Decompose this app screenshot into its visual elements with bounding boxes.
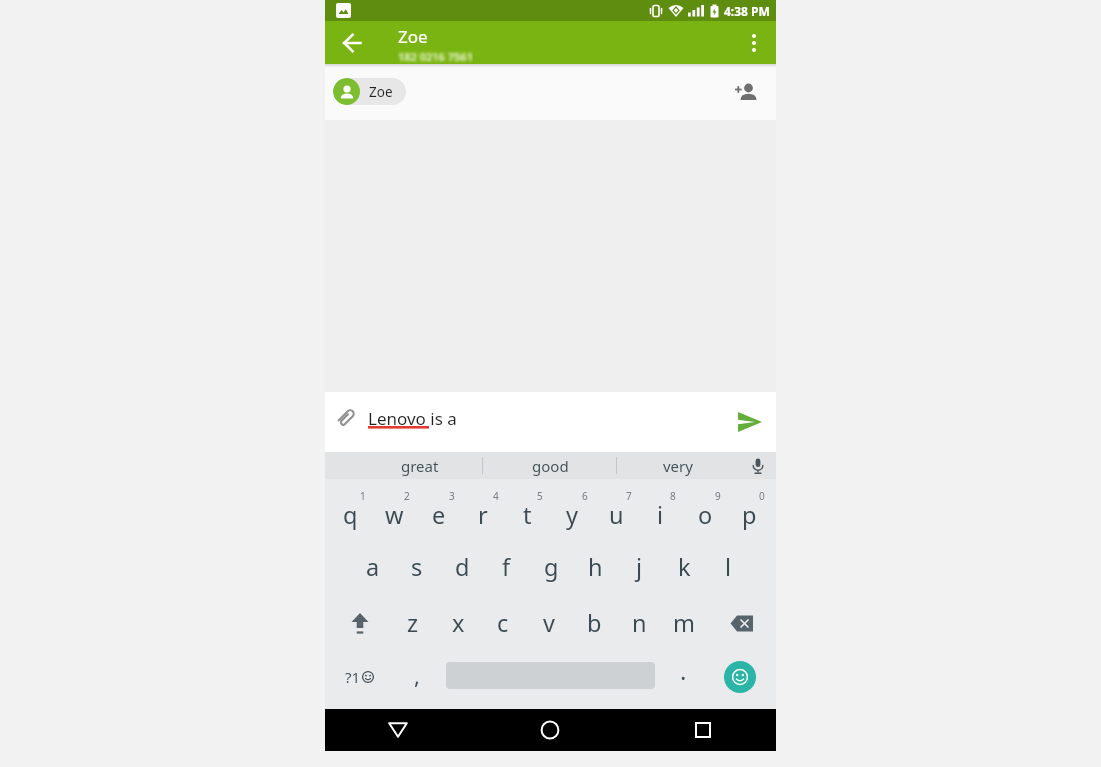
button[interactable] [724, 661, 756, 693]
staticText: 7 [626, 489, 632, 503]
staticText: Lenovo is a [368, 407, 457, 430]
button[interactable]: p [728, 490, 770, 540]
button[interactable]: h [574, 542, 616, 592]
button[interactable]: Zoe [333, 78, 406, 105]
button[interactable]: o [684, 490, 726, 540]
staticText: 8 [670, 489, 676, 503]
staticText: a [366, 551, 380, 583]
staticText: y [566, 499, 578, 531]
staticText: ?1 [345, 667, 361, 687]
staticText: t [523, 499, 532, 531]
button[interactable]: u [595, 490, 637, 540]
button[interactable]: x [437, 598, 479, 648]
button[interactable]: ?1 [333, 655, 385, 699]
staticText: o [698, 499, 713, 531]
button[interactable]: f [485, 542, 527, 592]
staticText: l [725, 551, 732, 583]
button[interactable]: very [638, 452, 718, 479]
staticText: good [532, 456, 569, 476]
button[interactable] [681, 709, 725, 751]
button[interactable] [338, 601, 382, 645]
button[interactable] [376, 709, 420, 751]
button[interactable]: w [373, 490, 415, 540]
staticText: h [588, 551, 603, 583]
staticText: p [742, 499, 757, 531]
staticText: 4 [493, 489, 499, 503]
staticText: j [636, 551, 643, 583]
button[interactable]: v [528, 598, 570, 648]
staticText: s [411, 551, 423, 583]
staticText: 2 [404, 489, 410, 503]
button[interactable] [331, 403, 361, 433]
staticText: k [678, 551, 691, 583]
staticText: i [657, 499, 664, 531]
button[interactable]: n [618, 598, 660, 648]
staticText: 5 [537, 489, 543, 503]
button[interactable]: . [662, 645, 704, 695]
staticText: Zoe [369, 83, 393, 101]
button[interactable]: l [707, 542, 749, 592]
staticText: , [414, 660, 420, 690]
staticText: very [663, 456, 693, 476]
staticText: w [385, 499, 404, 531]
staticText: q [343, 499, 358, 531]
staticText: r [478, 499, 488, 531]
button[interactable]: , [396, 650, 438, 700]
button[interactable] [740, 29, 768, 57]
button[interactable]: j [618, 542, 660, 592]
button[interactable]: t [506, 490, 548, 540]
button[interactable] [334, 25, 370, 61]
button[interactable] [528, 709, 572, 751]
staticText: 1 [360, 489, 366, 503]
button[interactable] [720, 601, 764, 645]
button[interactable]: i [639, 490, 681, 540]
staticText: u [609, 499, 624, 531]
button[interactable]: b [573, 598, 615, 648]
staticText: f [502, 551, 511, 583]
button[interactable] [734, 406, 766, 438]
staticText: z [407, 607, 419, 639]
staticText: 182 0216 7561 [398, 49, 473, 64]
button[interactable]: m [663, 598, 705, 648]
staticText: b [587, 607, 602, 639]
staticText: 0 [759, 489, 765, 503]
staticText: v [543, 607, 555, 639]
button[interactable]: q [329, 490, 371, 540]
staticText: g [544, 551, 559, 583]
button[interactable]: z [392, 598, 434, 648]
staticText: 3 [449, 489, 455, 503]
staticText: Zoe [398, 25, 428, 48]
button[interactable]: c [482, 598, 524, 648]
button[interactable]: d [441, 542, 483, 592]
button[interactable]: good [510, 452, 590, 479]
staticText: 4:38 PM [724, 3, 770, 19]
staticText: d [455, 551, 470, 583]
button[interactable]: a [352, 542, 394, 592]
staticText: m [673, 607, 695, 639]
button[interactable]: k [663, 542, 705, 592]
button[interactable] [744, 452, 771, 479]
staticText: 9 [715, 489, 721, 503]
staticText: x [452, 607, 465, 639]
staticText: e [432, 499, 446, 531]
staticText: c [497, 607, 509, 639]
staticText: great [401, 456, 439, 476]
staticText: . [680, 654, 687, 687]
staticText: 6 [582, 489, 588, 503]
button[interactable]: e [418, 490, 460, 540]
button[interactable] [732, 78, 760, 106]
button[interactable]: g [530, 542, 572, 592]
staticText: n [632, 607, 647, 639]
button[interactable]: r [462, 490, 504, 540]
button[interactable]: s [396, 542, 438, 592]
button[interactable]: great [380, 452, 460, 479]
button[interactable]: y [551, 490, 593, 540]
